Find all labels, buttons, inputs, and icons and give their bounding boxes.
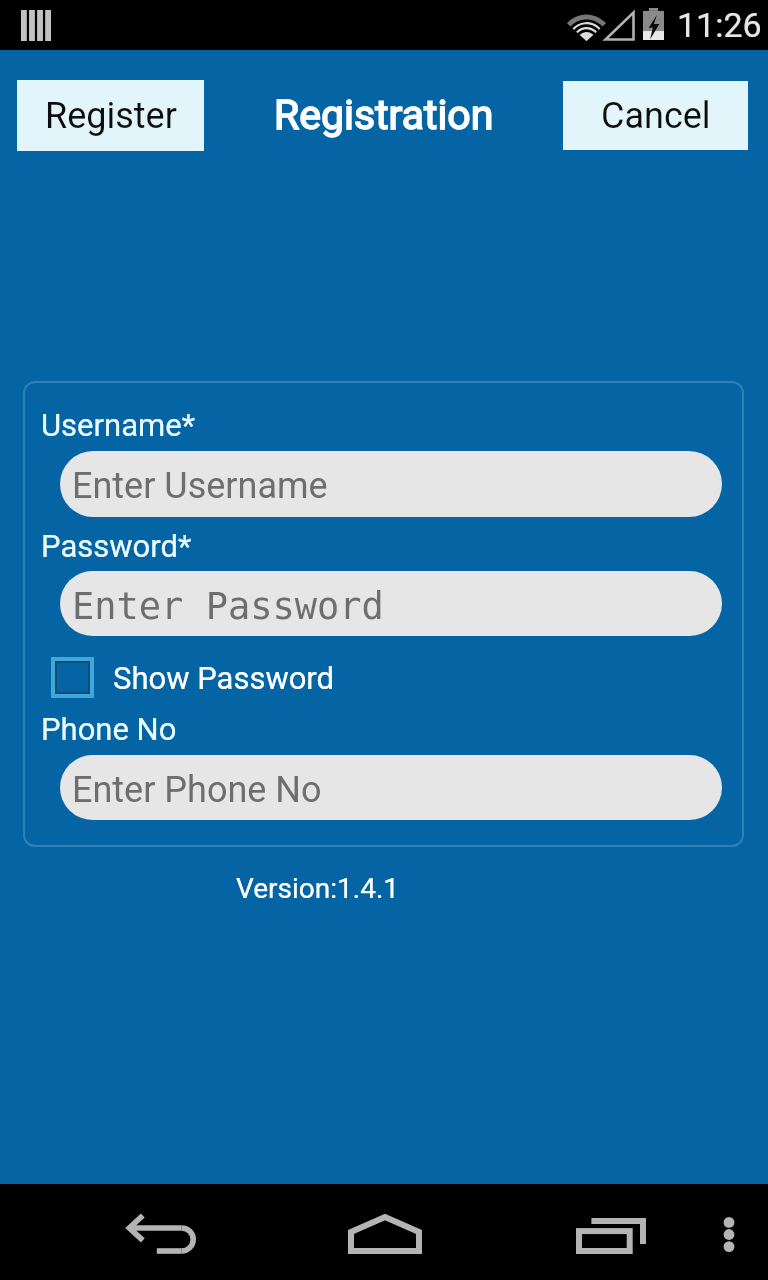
staticText: Register — [45, 95, 177, 137]
staticText: Registration — [274, 91, 494, 139]
staticText: Show Password — [113, 660, 335, 696]
button[interactable]: Home — [337, 1208, 433, 1260]
staticText: 11:26 — [677, 5, 762, 45]
button[interactable]: Enter Phone No — [60, 755, 722, 820]
button[interactable]: Register — [17, 80, 204, 151]
button[interactable]: Show Password — [51, 657, 335, 698]
staticText: Version:1.4.1 — [236, 872, 400, 905]
button[interactable]: More options — [703, 1206, 755, 1262]
staticText: Enter Phone No — [72, 769, 322, 811]
staticText: Cancel — [601, 95, 711, 137]
staticText: Password* — [41, 528, 192, 564]
staticText: Enter Username — [72, 465, 328, 507]
staticText: Phone No — [41, 711, 177, 747]
button[interactable]: Cancel — [563, 81, 748, 150]
button[interactable]: Enter Password — [60, 571, 722, 636]
staticText: Username* — [41, 407, 196, 443]
staticText: Enter Password — [72, 585, 384, 628]
button[interactable]: Enter Username — [60, 451, 722, 517]
button[interactable]: Recent apps — [563, 1210, 659, 1262]
button[interactable]: Back — [100, 1206, 196, 1260]
